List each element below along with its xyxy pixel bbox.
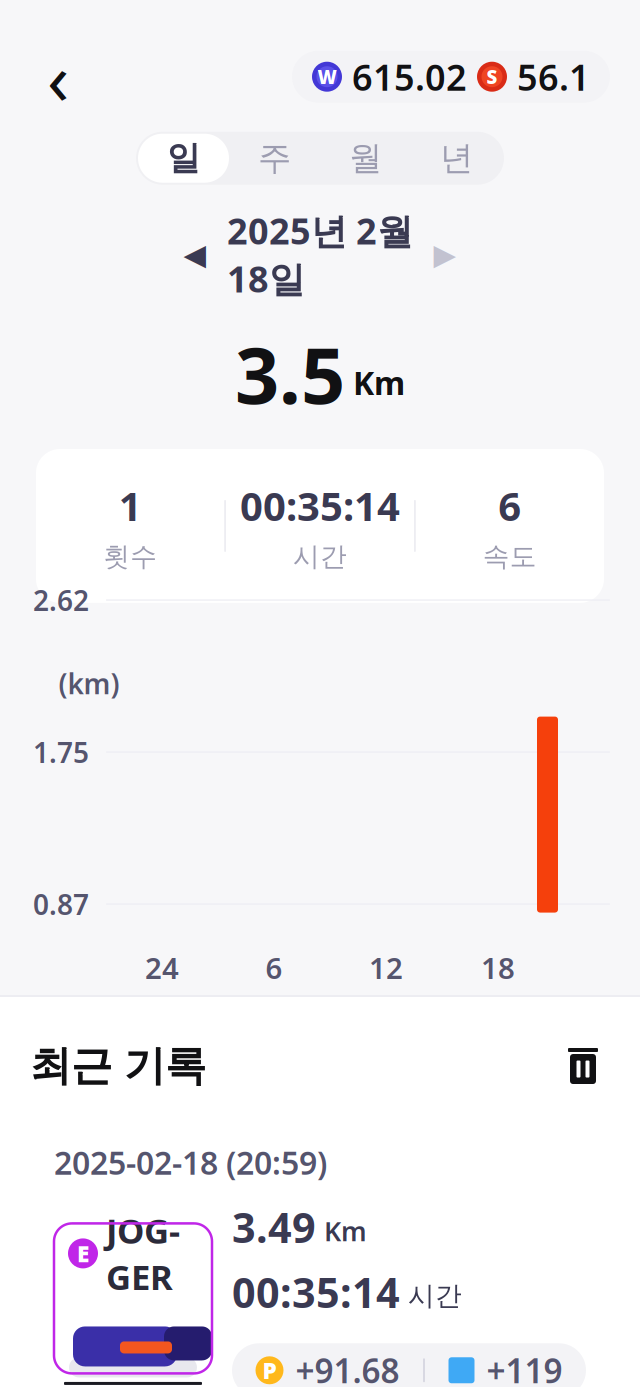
staticText: JOGGER xyxy=(106,1207,180,1299)
button[interactable]: Delete records xyxy=(556,1039,610,1093)
staticText: 3.49 xyxy=(232,1199,316,1254)
button[interactable]: 월 xyxy=(320,134,411,183)
staticText: Km xyxy=(353,361,405,404)
button[interactable]: 주 xyxy=(229,134,320,183)
staticText: 시간 xyxy=(293,540,347,573)
staticText: 1.75 xyxy=(33,733,89,771)
button[interactable]: Previous day xyxy=(170,231,220,277)
staticText: 주 xyxy=(258,138,291,179)
staticText: 24 xyxy=(145,948,179,987)
staticText: 615.02 xyxy=(352,53,467,101)
staticText: 6 xyxy=(265,948,282,987)
staticText: 56.1 xyxy=(517,53,590,101)
staticText: S xyxy=(486,64,497,89)
button[interactable]: 2025-02-18 (20:59) xyxy=(36,1119,604,1387)
staticText: 0 xyxy=(53,1037,69,1075)
staticText: 6 xyxy=(498,479,521,532)
staticText: 년 xyxy=(440,138,473,179)
staticText: 2025-02-18 (20:59) xyxy=(54,1141,327,1183)
staticText: 00:35:14 xyxy=(232,1264,400,1319)
staticText: 횟수 xyxy=(103,540,157,573)
staticText: (km) xyxy=(58,665,119,702)
staticText: 00:35:14 xyxy=(240,479,400,532)
staticText: Km xyxy=(324,1213,367,1249)
staticText: ◀ xyxy=(183,238,206,271)
staticText: ‹ xyxy=(47,29,69,124)
staticText: 1 xyxy=(119,479,142,532)
staticText: 0.87 xyxy=(33,885,89,923)
staticText: 월 xyxy=(349,138,382,179)
staticText: ▶ xyxy=(433,238,456,271)
staticText: 18 xyxy=(481,948,515,987)
staticText: +91.68 xyxy=(295,1348,399,1387)
button[interactable]: 일 xyxy=(138,134,229,183)
staticText: E xyxy=(77,1238,89,1268)
button[interactable]: Next day xyxy=(420,231,470,277)
button[interactable]: Back xyxy=(30,49,86,105)
staticText: 2025년 2월 18일 xyxy=(227,207,413,302)
staticText: 일 xyxy=(167,138,200,179)
button[interactable]: Points balance xyxy=(292,51,610,103)
staticText: 2.62 xyxy=(33,581,89,619)
button[interactable]: 년 xyxy=(411,134,502,183)
staticText: P xyxy=(262,1355,276,1385)
staticText: 12 xyxy=(369,948,403,987)
staticText: 최근 기록 xyxy=(30,1041,206,1091)
staticText: W xyxy=(317,64,336,89)
staticText: +119 xyxy=(486,1348,562,1387)
staticText: 속도 xyxy=(483,540,537,573)
staticText: 3.5 xyxy=(235,322,345,425)
staticText: 시간 xyxy=(408,1279,462,1312)
